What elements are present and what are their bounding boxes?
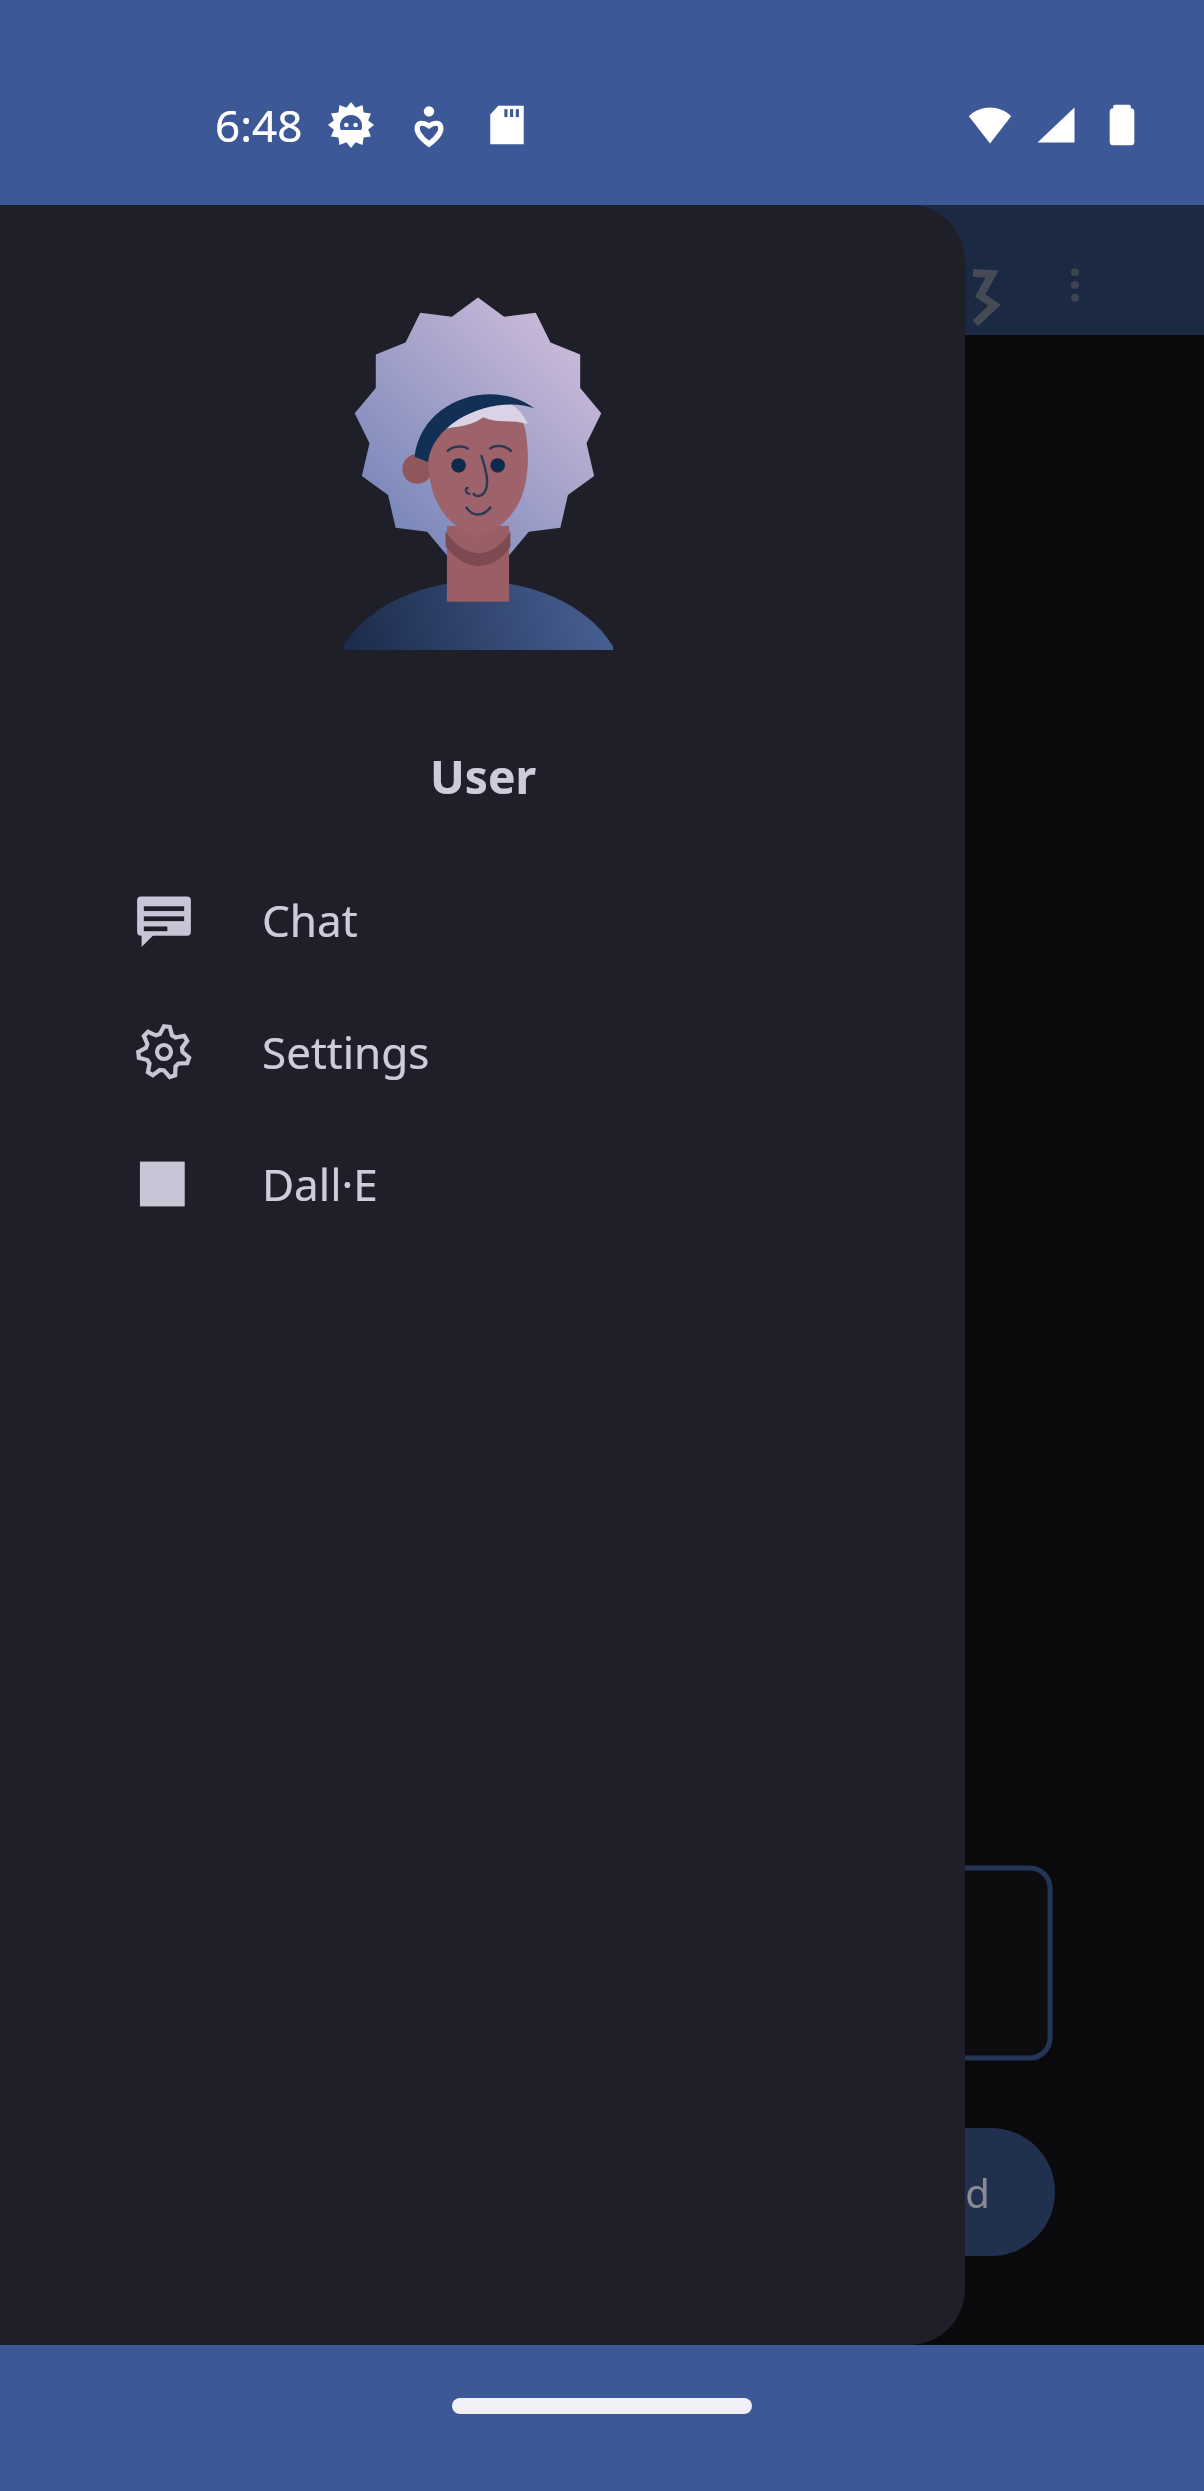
button[interactable]: Settings [0, 986, 965, 1118]
staticText: Chat [262, 890, 358, 950]
button[interactable]: Send [830, 2128, 1055, 2256]
button[interactable]: More options [1040, 250, 1110, 320]
button[interactable]: Chat [0, 854, 965, 986]
staticText: User [430, 745, 536, 808]
button[interactable]: Dall·E [0, 1118, 965, 1250]
staticText: Settings [262, 1022, 430, 1082]
staticText: 6:48 [215, 95, 303, 155]
staticText: Send [896, 2165, 990, 2219]
staticText: Dall·E [262, 1154, 378, 1214]
